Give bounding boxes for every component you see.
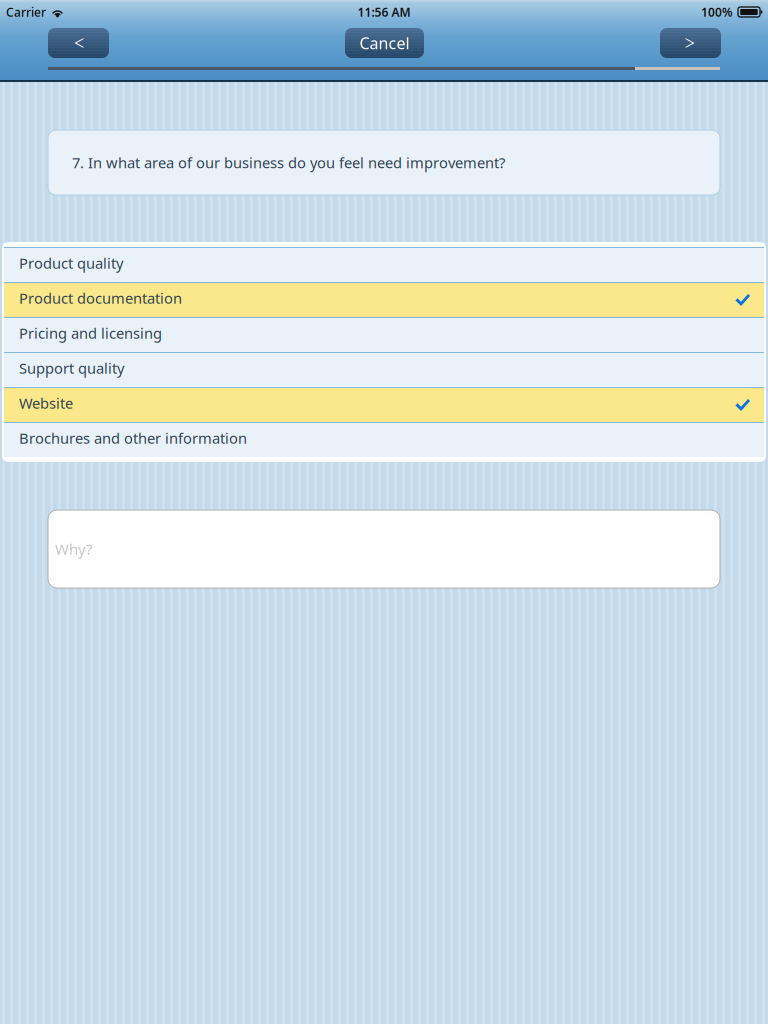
button[interactable]: Brochures and other information xyxy=(4,422,764,457)
button[interactable]: Pricing and licensing xyxy=(4,317,764,352)
button[interactable]: Product documentation xyxy=(4,282,764,317)
button[interactable]: Support quality xyxy=(4,352,764,387)
staticText: Why? xyxy=(55,539,92,559)
staticText: 11:56 AM xyxy=(357,4,410,20)
button[interactable]: Cancel xyxy=(345,28,424,58)
staticText: Website xyxy=(19,393,73,413)
staticText: Product documentation xyxy=(19,288,182,308)
staticText: Support quality xyxy=(19,358,124,378)
button[interactable]: Product quality xyxy=(4,247,764,282)
staticText: Brochures and other information xyxy=(19,428,247,448)
button[interactable]: Website xyxy=(4,387,764,422)
staticText: Carrier xyxy=(6,4,46,20)
staticText: Pricing and licensing xyxy=(19,323,162,343)
staticText: Cancel xyxy=(359,32,409,54)
button[interactable]: Previous question xyxy=(48,28,109,58)
button[interactable]: Next question xyxy=(660,28,721,58)
staticText: Product quality xyxy=(19,253,123,273)
staticText: 100% xyxy=(701,4,733,20)
staticText: 7. In what area of our business do you f… xyxy=(72,153,505,172)
